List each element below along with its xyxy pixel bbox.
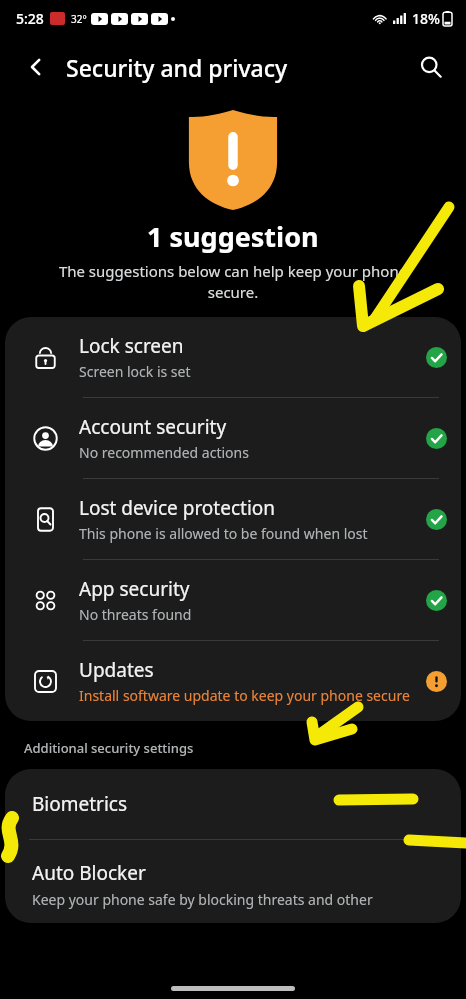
staticText: Lock screen: [79, 333, 184, 359]
staticText: The suggestions below can help keep your…: [36, 261, 430, 303]
button[interactable]: Account security: [5, 398, 461, 478]
staticText: Keep your phone safe by blocking threats…: [32, 890, 373, 909]
staticText: This phone is allowed to be found when l…: [79, 524, 368, 543]
button[interactable]: Search: [408, 44, 454, 90]
button[interactable]: Auto Blocker: [5, 840, 461, 923]
button[interactable]: Lost device protection: [5, 479, 461, 559]
button[interactable]: Lock screen: [5, 317, 461, 397]
button[interactable]: Back: [14, 45, 58, 89]
staticText: 32°: [71, 12, 87, 26]
staticText: 5:28: [16, 9, 44, 28]
staticText: Security and privacy: [66, 52, 288, 83]
staticText: App security: [79, 576, 190, 602]
button[interactable]: Biometrics: [5, 769, 461, 839]
staticText: No recommended actions: [79, 443, 249, 462]
staticText: No threats found: [79, 605, 192, 624]
staticText: Additional security settings: [24, 739, 194, 757]
staticText: Auto Blocker: [32, 860, 146, 886]
staticText: 1 suggestion: [147, 218, 319, 255]
staticText: 18%: [412, 9, 440, 28]
button[interactable]: Updates: [5, 641, 461, 721]
staticText: Install software update to keep your pho…: [79, 686, 410, 705]
staticText: Updates: [79, 657, 154, 683]
button[interactable]: App security: [5, 560, 461, 640]
staticText: Account security: [79, 414, 227, 440]
staticText: Lost device protection: [79, 495, 276, 521]
staticText: Biometrics: [32, 791, 128, 817]
staticText: Screen lock is set: [79, 362, 191, 381]
